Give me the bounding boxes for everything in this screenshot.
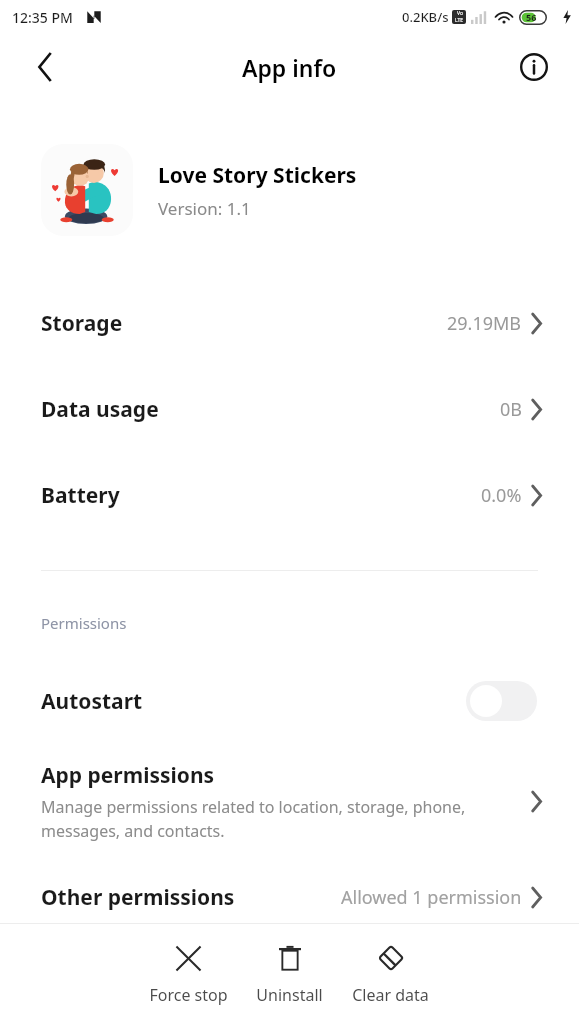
staticText: Battery <box>41 481 120 510</box>
button[interactable]: Help <box>514 47 554 87</box>
staticText: 0.2KB/s <box>402 8 449 26</box>
button[interactable]: Uninstall <box>239 937 340 1012</box>
button[interactable]: Force stop <box>138 937 239 1012</box>
staticText: Permissions <box>41 613 127 633</box>
staticText: Clear data <box>352 984 429 1006</box>
button[interactable]: App permissions <box>0 753 579 850</box>
button[interactable]: Data usage <box>0 366 579 452</box>
staticText: App permissions <box>41 761 215 790</box>
staticText: 12:35 PM <box>12 8 73 27</box>
staticText: Force stop <box>149 984 228 1006</box>
staticText: 0.0% <box>481 483 522 508</box>
staticText: 29.19MB <box>447 311 522 336</box>
staticText: 56 <box>526 11 537 23</box>
button[interactable]: Autostart toggle, off <box>466 681 537 721</box>
staticText: Love Story Stickers <box>158 161 357 190</box>
staticText: Autostart <box>41 687 143 716</box>
staticText: Data usage <box>41 395 159 424</box>
staticText: Version: 1.1 <box>158 197 251 220</box>
staticText: Allowed 1 permission <box>341 885 522 910</box>
staticText: Manage permissions related to location, … <box>41 796 489 842</box>
button[interactable]: Battery <box>0 452 579 538</box>
button[interactable]: Back <box>20 42 70 92</box>
staticText: Uninstall <box>256 984 323 1006</box>
button[interactable]: Clear data <box>340 937 441 1012</box>
staticText: LTE <box>455 17 464 24</box>
button[interactable]: Autostart <box>0 663 579 739</box>
staticText: App info <box>242 52 337 83</box>
button[interactable]: Other permissions <box>0 870 579 924</box>
staticText: Other permissions <box>41 883 235 912</box>
staticText: Vo <box>457 10 463 17</box>
button[interactable]: Storage <box>0 280 579 366</box>
staticText: 0B <box>500 397 522 422</box>
staticText: Storage <box>41 309 123 338</box>
